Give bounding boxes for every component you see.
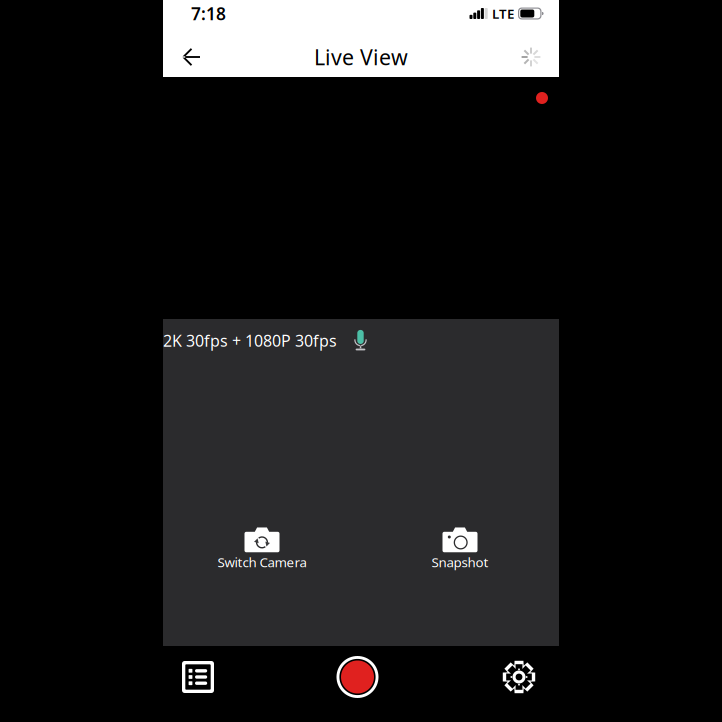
staticText: Snapshot: [431, 553, 488, 571]
button[interactable]: Switch Camera: [163, 527, 361, 571]
staticText: LTE: [492, 5, 514, 22]
button[interactable]: Snapshot: [361, 527, 559, 571]
staticText: 7:18: [191, 2, 226, 25]
button[interactable]: Record: [326, 646, 388, 708]
button[interactable]: Back: [169, 35, 213, 79]
staticText: 2K 30fps + 1080P 30fps: [163, 330, 337, 351]
button[interactable]: Recordings: [163, 646, 233, 708]
staticText: Live View: [314, 43, 408, 71]
button[interactable]: Loading: [509, 35, 553, 79]
button[interactable]: Settings: [482, 646, 556, 708]
staticText: Switch Camera: [217, 553, 306, 571]
